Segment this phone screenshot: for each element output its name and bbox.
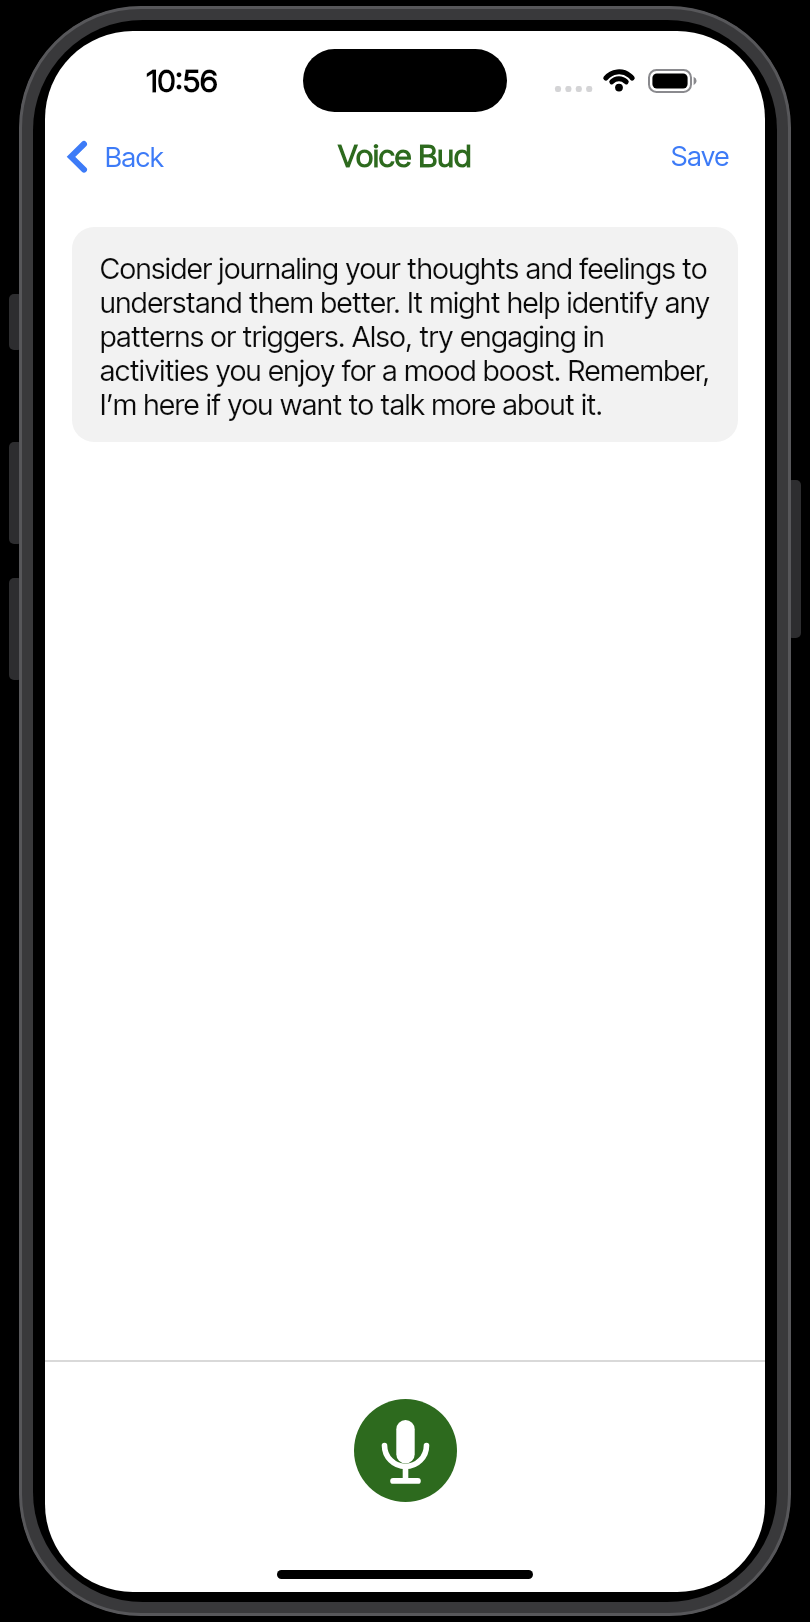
button[interactable] [354, 1399, 457, 1502]
staticText: Consider journaling your thoughts and fe… [100, 251, 716, 422]
button[interactable]: Save [592, 131, 752, 177]
staticText: Back [105, 140, 164, 173]
button[interactable]: Back [68, 140, 164, 173]
staticText: 10:56 [102, 62, 262, 100]
staticText: Save [671, 139, 730, 172]
staticText: Voice Bud [338, 137, 472, 175]
